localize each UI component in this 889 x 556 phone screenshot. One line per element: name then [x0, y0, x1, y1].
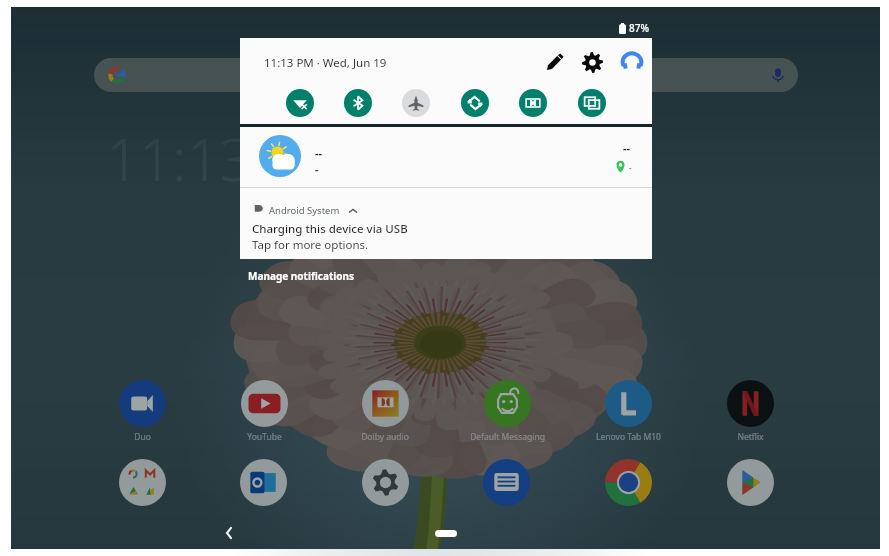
button[interactable]: Back	[215, 519, 243, 547]
button[interactable]: messages	[483, 459, 530, 506]
button[interactable]: Auto-rotate	[461, 89, 489, 117]
button[interactable]: Wi-Fi off	[286, 89, 314, 117]
button[interactable]: Home	[435, 530, 457, 537]
button[interactable]: --	[240, 127, 652, 194]
staticText: 11:13	[106, 119, 253, 198]
button[interactable]: Settings	[582, 52, 603, 73]
button[interactable]: Dolby Atmos	[519, 89, 547, 117]
staticText: Duo	[134, 431, 151, 443]
staticText: Charging this device via USB	[252, 221, 408, 237]
button[interactable]: Bluetooth	[344, 89, 372, 117]
button[interactable]: chrome	[605, 459, 652, 506]
button[interactable]: play	[727, 459, 774, 506]
button[interactable]: outlook	[240, 459, 287, 506]
button[interactable]: Edit quick settings	[545, 53, 564, 72]
button[interactable]: Netflix	[698, 380, 802, 443]
staticText: Lenovo Tab M10	[596, 431, 661, 443]
button[interactable]: Dolby audio	[333, 380, 437, 443]
staticText: Android System	[269, 204, 340, 217]
staticText: --	[315, 145, 323, 160]
button[interactable]: Airplane mode	[402, 89, 430, 117]
staticText: 87%	[629, 21, 649, 35]
button[interactable]: settings	[362, 459, 409, 506]
button[interactable]: Multi-window	[578, 89, 606, 117]
staticText: Dolby audio	[361, 431, 409, 443]
button[interactable]: User account	[620, 50, 644, 74]
staticText: YouTube	[247, 431, 282, 443]
staticText: -	[315, 161, 319, 176]
button[interactable]: google	[119, 459, 166, 506]
staticText: -	[629, 162, 632, 173]
staticText: 11:13 PM · Wed, Jun 19	[264, 55, 387, 71]
staticText: Tap for more options.	[252, 237, 369, 253]
other: Voice search	[769, 66, 787, 84]
button[interactable]: Android System	[240, 188, 652, 259]
button[interactable]: Manage notifications	[248, 269, 354, 283]
button[interactable]: Default Messaging	[455, 380, 559, 443]
button[interactable]: Lenovo Tab M10	[576, 380, 680, 443]
staticText: --	[623, 140, 631, 155]
staticText: Default Messaging	[470, 431, 545, 443]
button[interactable]: Duo	[90, 380, 194, 443]
button[interactable]: YouTube	[212, 380, 316, 443]
button[interactable]: Voice search	[94, 58, 798, 92]
staticText: Netflix	[737, 431, 764, 443]
